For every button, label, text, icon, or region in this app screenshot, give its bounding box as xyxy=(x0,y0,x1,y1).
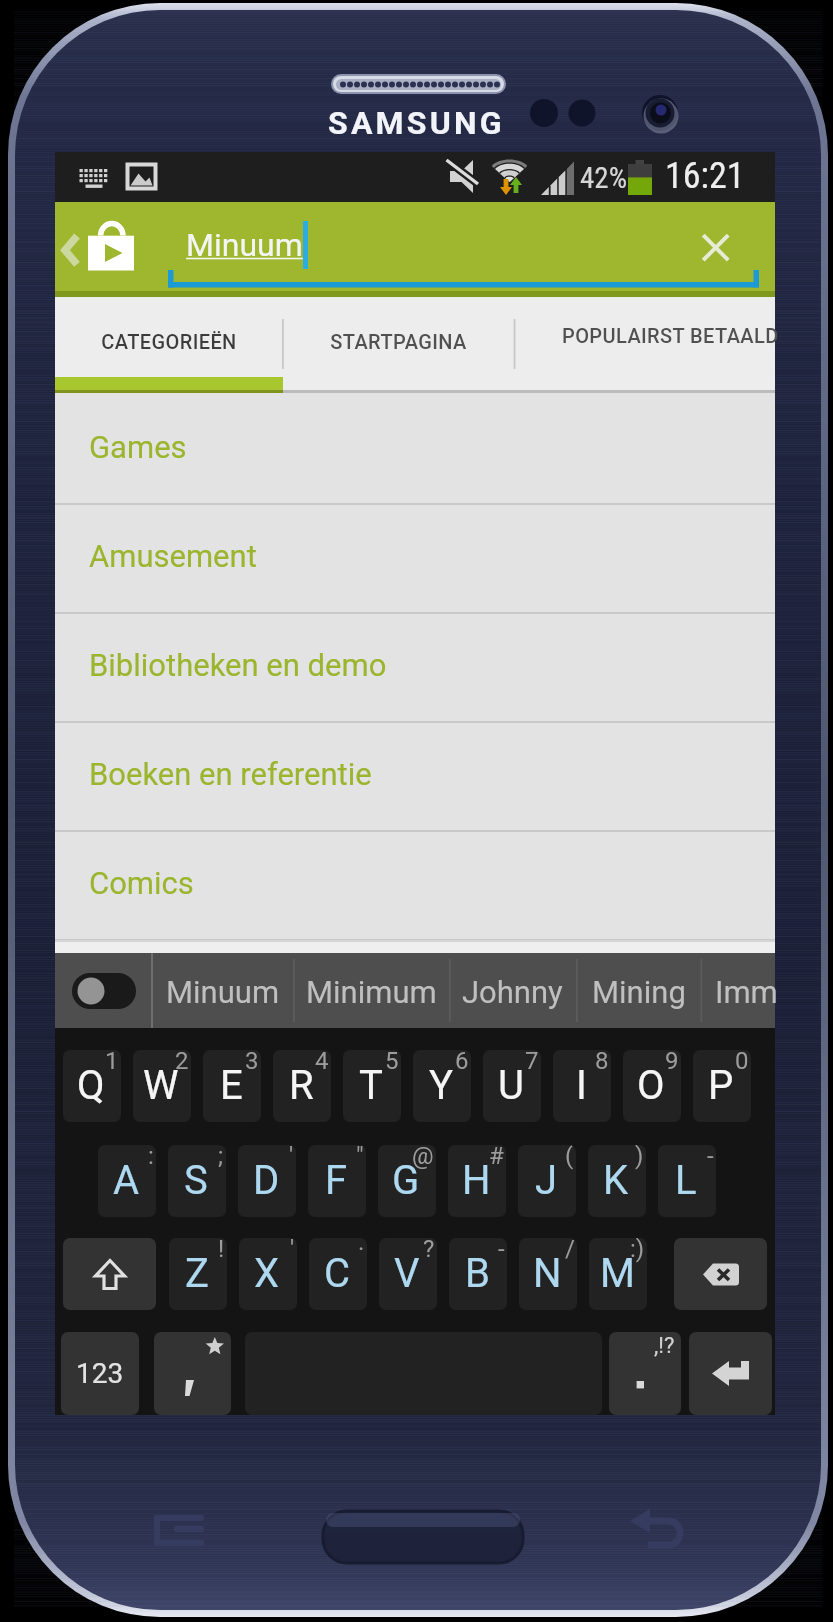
staticText: ; xyxy=(218,1145,224,1170)
staticText: Minimum xyxy=(306,974,437,1010)
staticText: F xyxy=(325,1157,348,1204)
button[interactable]: C xyxy=(309,1238,367,1310)
button[interactable]: Q xyxy=(63,1050,121,1122)
staticText: Mining xyxy=(592,974,686,1010)
button[interactable]: W xyxy=(133,1050,191,1122)
staticText: S xyxy=(184,1157,208,1204)
staticText: - xyxy=(498,1238,505,1263)
button[interactable]: POPULAIRST BETAALD xyxy=(514,297,775,378)
staticText: 0 xyxy=(735,1050,749,1075)
staticText: X xyxy=(254,1250,280,1297)
staticText: STARTPAGINA xyxy=(330,330,467,353)
button[interactable]: Minimum xyxy=(293,953,449,1028)
staticText: Boeken en referentie xyxy=(89,756,372,792)
button[interactable]: Back to Play Store xyxy=(55,202,151,297)
staticText: T xyxy=(359,1062,383,1109)
button[interactable]: Clear search xyxy=(675,202,767,297)
staticText: L xyxy=(675,1157,697,1204)
button[interactable]: V xyxy=(379,1238,437,1310)
button[interactable]: Comma xyxy=(154,1332,231,1415)
staticText: 16:21 xyxy=(665,155,745,197)
staticText: U xyxy=(498,1062,524,1109)
staticText: M xyxy=(600,1250,635,1297)
button[interactable]: B xyxy=(449,1238,507,1310)
staticText: ' xyxy=(290,1238,295,1263)
staticText: ( xyxy=(565,1145,574,1170)
button[interactable]: Shift xyxy=(63,1238,156,1310)
button[interactable]: Bibliotheken en demo xyxy=(55,611,775,720)
staticText: 6 xyxy=(455,1050,469,1075)
button[interactable]: F xyxy=(308,1145,366,1217)
staticText: / xyxy=(565,1238,575,1263)
staticText: R xyxy=(289,1062,314,1109)
staticText: Amusement xyxy=(89,538,257,574)
staticText: Minuum xyxy=(186,226,303,264)
button[interactable]: Period xyxy=(609,1332,681,1415)
staticText: " xyxy=(356,1145,364,1170)
staticText: ,!? xyxy=(654,1333,675,1359)
button[interactable]: Boeken en referentie xyxy=(55,720,775,829)
button[interactable]: A xyxy=(98,1145,156,1217)
staticText: 1 xyxy=(105,1050,119,1075)
staticText: 5 xyxy=(385,1050,399,1075)
staticText: B xyxy=(465,1250,490,1297)
button[interactable]: X xyxy=(239,1238,297,1310)
staticText: :) xyxy=(630,1238,645,1263)
button[interactable]: CATEGORIEËN xyxy=(55,297,282,378)
staticText: Comics xyxy=(89,865,194,901)
button[interactable]: Imm xyxy=(701,953,776,1028)
button[interactable]: U xyxy=(483,1050,541,1122)
button[interactable]: Games xyxy=(55,393,775,502)
button[interactable]: T xyxy=(343,1050,401,1122)
button[interactable]: D xyxy=(238,1145,296,1217)
staticText: 7 xyxy=(525,1050,539,1075)
button[interactable]: P xyxy=(693,1050,751,1122)
staticText: Johnny xyxy=(462,974,563,1010)
button[interactable]: K xyxy=(588,1145,646,1217)
staticText: Y xyxy=(429,1062,454,1109)
staticText: POPULAIRST BETAALD xyxy=(562,324,779,347)
button[interactable]: Amusement xyxy=(55,502,775,611)
staticText: Bibliotheken en demo xyxy=(89,647,387,683)
staticText: 4 xyxy=(315,1050,329,1075)
staticText: ? xyxy=(423,1238,435,1263)
button[interactable]: L xyxy=(658,1145,716,1217)
button[interactable]: STARTPAGINA xyxy=(282,297,514,378)
button[interactable]: O xyxy=(623,1050,681,1122)
button[interactable]: Comics xyxy=(55,829,775,938)
staticText: Minuum xyxy=(166,974,280,1010)
button[interactable]: 123 xyxy=(61,1332,139,1415)
staticText: C xyxy=(324,1250,351,1297)
button[interactable]: R xyxy=(273,1050,331,1122)
staticText: : xyxy=(148,1145,154,1170)
staticText: · xyxy=(358,1238,365,1263)
staticText: 3 xyxy=(245,1050,259,1075)
button[interactable]: Backspace xyxy=(674,1238,767,1310)
staticText: Z xyxy=(185,1250,209,1297)
button[interactable]: Minuum xyxy=(152,953,293,1028)
button[interactable]: M xyxy=(589,1238,647,1310)
staticText: A xyxy=(113,1157,140,1204)
button[interactable]: Enter xyxy=(689,1332,772,1415)
staticText: CATEGORIEËN xyxy=(101,330,237,353)
staticText: K xyxy=(603,1157,629,1204)
staticText: 2 xyxy=(175,1050,189,1075)
button[interactable]: Mining xyxy=(576,953,701,1028)
staticText: 8 xyxy=(595,1050,609,1075)
button[interactable]: Z xyxy=(169,1238,227,1310)
button[interactable]: Y xyxy=(413,1050,471,1122)
button[interactable]: S xyxy=(168,1145,226,1217)
button[interactable]: H xyxy=(448,1145,506,1217)
staticText: # xyxy=(489,1145,504,1170)
button[interactable]: G xyxy=(378,1145,436,1217)
staticText: Q xyxy=(77,1062,105,1109)
button[interactable]: I xyxy=(553,1050,611,1122)
staticText: Games xyxy=(89,429,187,465)
button[interactable]: Toggle suggestions xyxy=(55,953,152,1028)
button[interactable]: E xyxy=(203,1050,261,1122)
button[interactable]: Johnny xyxy=(449,953,576,1028)
staticText: P xyxy=(708,1062,734,1109)
button[interactable]: J xyxy=(518,1145,576,1217)
button[interactable]: N xyxy=(519,1238,577,1310)
